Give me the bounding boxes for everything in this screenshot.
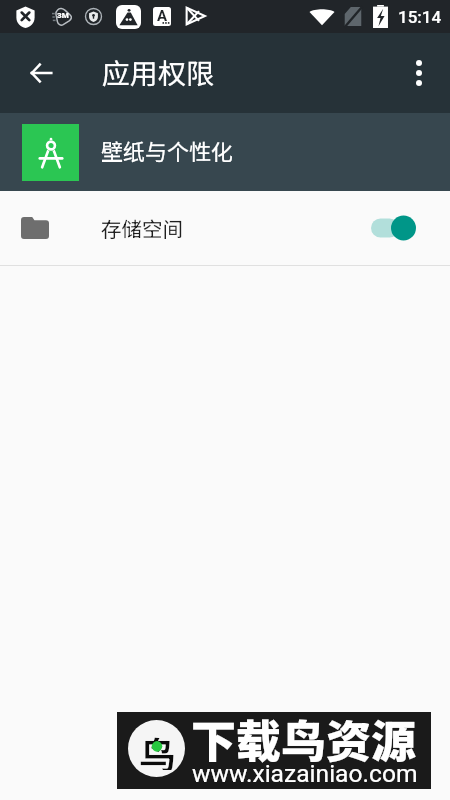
staticText: 下载鸟资源: [191, 712, 417, 771]
staticText: 壁纸与个性化: [101, 134, 234, 166]
staticText: 存储空间: [101, 213, 183, 243]
button[interactable]: 存储空间: [0, 191, 450, 265]
button[interactable]: 壁纸与个性化: [0, 113, 450, 191]
staticText: 3M: [57, 11, 69, 20]
staticText: 应用权限: [102, 52, 215, 93]
staticText: 鸟: [139, 726, 176, 770]
button[interactable]: Storage permission toggle: [371, 210, 417, 246]
button[interactable]: More options: [396, 50, 442, 96]
button[interactable]: Back: [18, 50, 64, 96]
staticText: 15:14: [398, 7, 442, 27]
staticText: A: [157, 7, 168, 25]
staticText: www.xiazainiao.com: [192, 759, 418, 788]
